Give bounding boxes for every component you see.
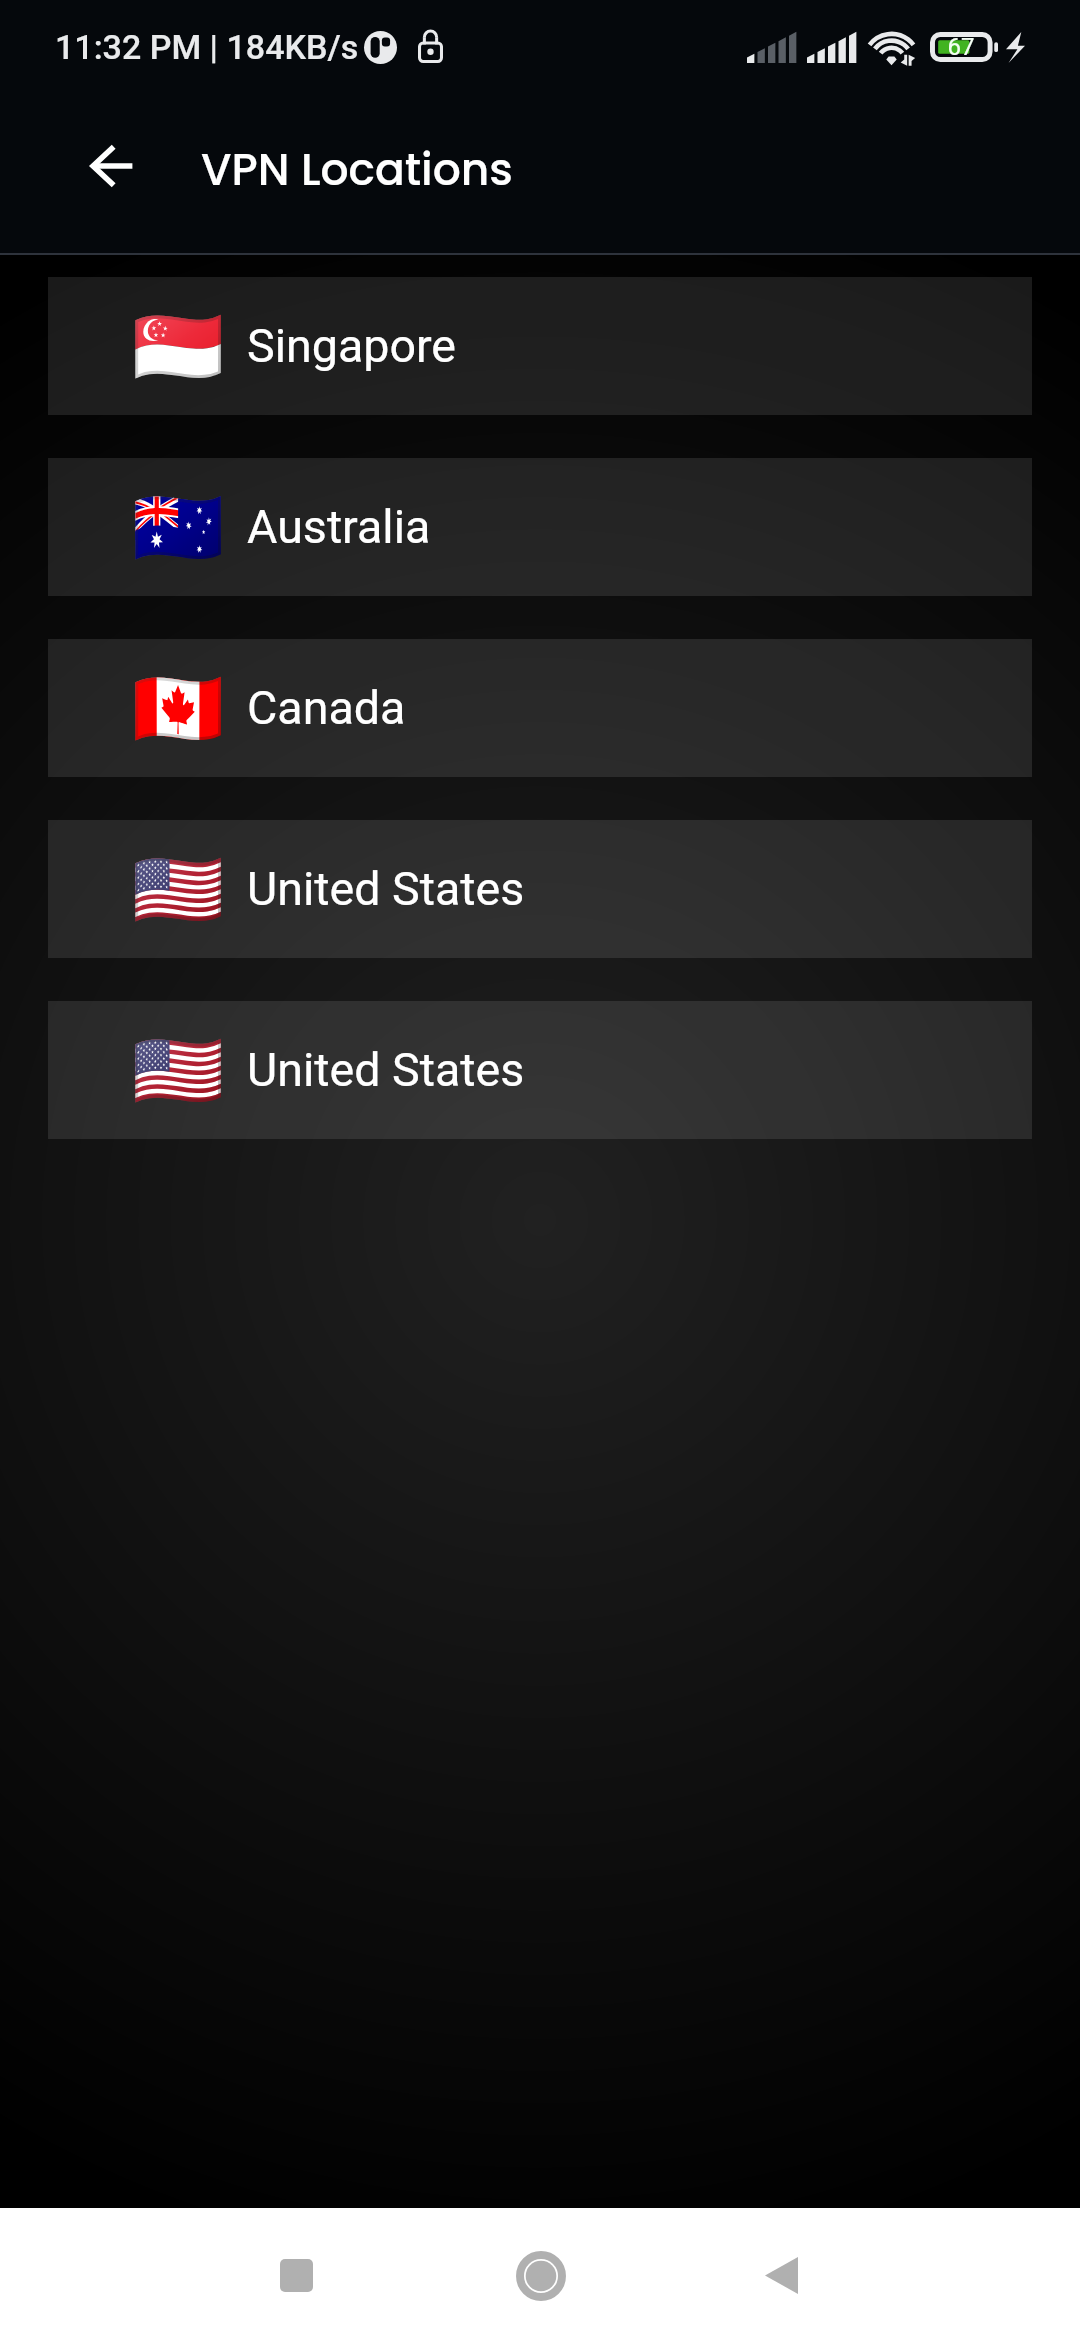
button[interactable]: 🇺🇸 — [48, 1001, 1032, 1139]
button[interactable]: Recent apps — [236, 2215, 356, 2335]
staticText: United States — [247, 862, 525, 917]
staticText: Singapore — [247, 319, 457, 374]
staticText: 🇺🇸 — [132, 1027, 225, 1114]
button[interactable]: Home — [481, 2216, 601, 2336]
button[interactable]: 🇺🇸 — [48, 820, 1032, 958]
staticText: 🇺🇸 — [132, 846, 225, 933]
staticText: 🇸🇬 — [132, 303, 225, 390]
staticText: 11:32 PM | 184KB/s — [55, 27, 359, 67]
staticText: 🇨🇦 — [132, 665, 225, 752]
staticText: United States — [247, 1043, 525, 1098]
staticText: Canada — [247, 681, 406, 736]
button[interactable]: Back — [66, 120, 158, 212]
button[interactable]: 🇸🇬 — [48, 277, 1032, 415]
staticText: VPN Locations — [201, 139, 513, 201]
button[interactable]: 🇦🇺 — [48, 458, 1032, 596]
staticText: Australia — [247, 500, 431, 555]
staticText: 🇦🇺 — [132, 484, 225, 571]
staticText: 67 — [945, 33, 977, 61]
button[interactable]: 🇨🇦 — [48, 639, 1032, 777]
button[interactable]: Back — [721, 2215, 841, 2335]
